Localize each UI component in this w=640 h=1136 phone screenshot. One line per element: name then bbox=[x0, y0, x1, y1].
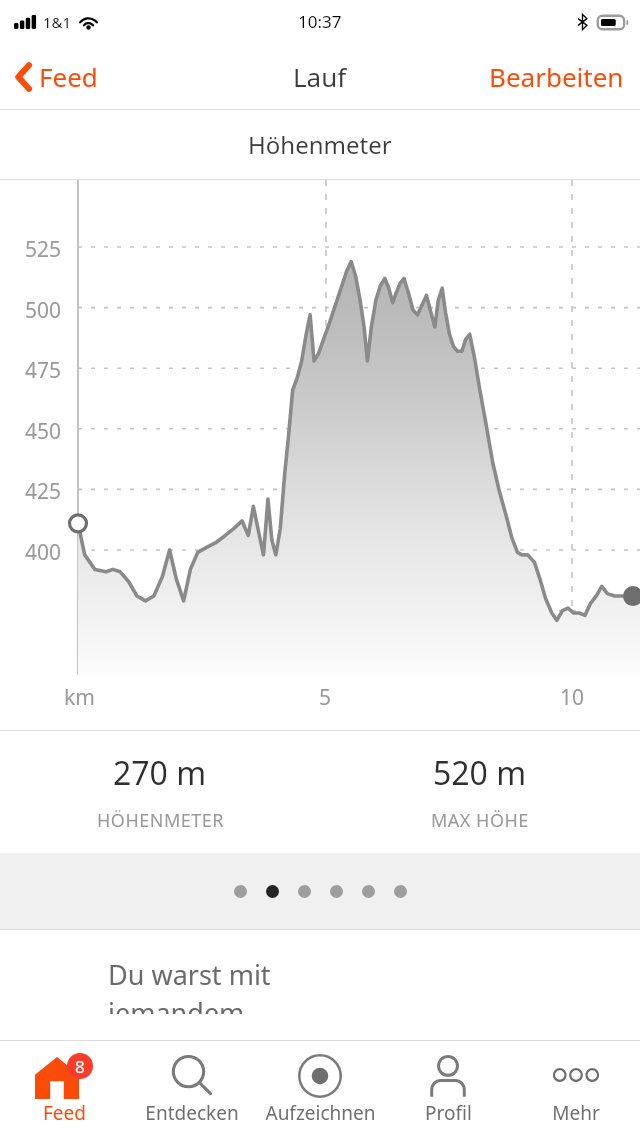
staticText: Mehr bbox=[552, 1100, 600, 1126]
staticText: km bbox=[64, 683, 95, 712]
staticText: Feed bbox=[43, 1100, 86, 1126]
staticText: 450 bbox=[25, 417, 62, 446]
staticText: 270 m bbox=[113, 751, 207, 795]
button[interactable] bbox=[234, 885, 247, 898]
staticText: Lauf bbox=[293, 59, 347, 94]
other: Aufzeichnen bbox=[297, 1053, 343, 1099]
other: Feed bbox=[31, 1053, 97, 1099]
button[interactable] bbox=[298, 885, 311, 898]
staticText: Bearbeiten bbox=[489, 59, 624, 94]
staticText: MAX HÖHE bbox=[431, 808, 529, 833]
staticText: 520 m bbox=[433, 751, 527, 795]
staticText: Höhenmeter bbox=[248, 128, 392, 161]
staticText: HÖHENMETER bbox=[97, 808, 224, 833]
staticText: 525 bbox=[25, 235, 62, 264]
staticText: 8 bbox=[75, 1055, 85, 1078]
staticText: Profil bbox=[425, 1100, 472, 1126]
button[interactable]: Aufzeichnen bbox=[256, 1041, 384, 1136]
button[interactable]: Bearbeiten bbox=[473, 44, 640, 109]
other: Profil bbox=[426, 1054, 470, 1098]
button[interactable] bbox=[330, 885, 343, 898]
staticText: Feed bbox=[39, 59, 98, 94]
staticText: Entdecken bbox=[145, 1100, 239, 1126]
button[interactable] bbox=[362, 885, 375, 898]
staticText: 400 bbox=[25, 538, 62, 567]
button[interactable] bbox=[394, 885, 407, 898]
other: Entdecken bbox=[170, 1054, 214, 1098]
button[interactable]: Entdecken bbox=[128, 1041, 256, 1136]
button[interactable]: Du warst mit jemandem bbox=[0, 930, 640, 1014]
staticText: 475 bbox=[25, 356, 62, 385]
button[interactable]: Feed bbox=[0, 44, 110, 109]
button[interactable]: Mehr bbox=[512, 1041, 640, 1136]
staticText: 10:37 bbox=[298, 10, 342, 33]
button[interactable]: Profil bbox=[384, 1041, 512, 1136]
staticText: 500 bbox=[25, 296, 62, 325]
staticText: 5 bbox=[319, 683, 332, 712]
staticText: Aufzeichnen bbox=[265, 1100, 376, 1126]
button[interactable]: Feed bbox=[0, 1041, 128, 1136]
staticText: 425 bbox=[25, 477, 62, 506]
button[interactable] bbox=[266, 885, 279, 898]
other: Mehr bbox=[547, 1066, 605, 1086]
staticText: 1&1 bbox=[43, 12, 72, 32]
staticText: Du warst mit jemandem bbox=[108, 956, 271, 1014]
staticText: 10 bbox=[560, 683, 585, 712]
